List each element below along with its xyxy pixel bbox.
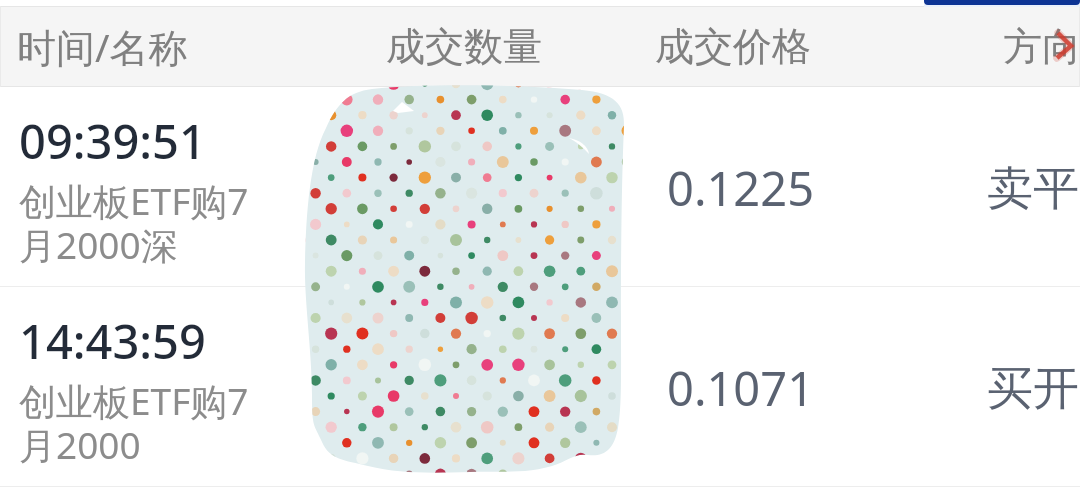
button[interactable]: 成交数量 bbox=[386, 6, 542, 87]
staticText: 09:39:51 bbox=[19, 109, 206, 173]
button[interactable]: Selected tab indicator bbox=[924, 0, 1080, 5]
button[interactable]: 成交价格 bbox=[655, 6, 811, 87]
button[interactable]: 时间/名称 bbox=[17, 6, 188, 87]
staticText: 买开 bbox=[987, 360, 1079, 418]
staticText: 创业板ETF购7月2000深 bbox=[19, 175, 251, 270]
staticText: 时间/名称 bbox=[17, 20, 188, 73]
staticText: 0.1225 bbox=[667, 156, 815, 220]
staticText: 14:43:59 bbox=[19, 309, 206, 373]
staticText: 方向 bbox=[1003, 22, 1080, 71]
staticText: 成交数量 bbox=[386, 22, 542, 71]
staticText: 创业板ETF购7月2000 bbox=[19, 375, 251, 470]
staticText: 0.1071 bbox=[667, 356, 815, 420]
staticText: 卖平 bbox=[987, 160, 1079, 218]
button[interactable]: 方向 bbox=[1003, 6, 1080, 87]
staticText: 成交价格 bbox=[655, 22, 811, 71]
button[interactable]: More / next bbox=[1052, 22, 1076, 58]
button[interactable]: 14:43:59 bbox=[0, 287, 1080, 487]
button[interactable]: 09:39:51 bbox=[0, 87, 1080, 287]
